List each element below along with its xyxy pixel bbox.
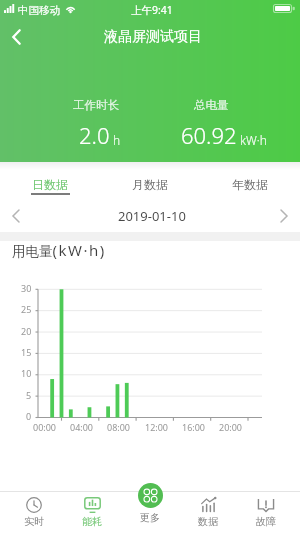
staticText: 工作时长 <box>73 98 119 112</box>
staticText: 20:00 <box>219 421 243 433</box>
staticText: 故障 <box>256 515 276 528</box>
staticText: 月数据 <box>132 177 168 192</box>
staticText: 25 <box>21 303 32 315</box>
button[interactable]: 实时 <box>5 491 63 533</box>
staticText: 更多 <box>140 511 160 524</box>
staticText: 30 <box>21 282 32 294</box>
staticText: 日数据 <box>32 177 68 192</box>
button[interactable]: 年数据 <box>200 162 300 199</box>
staticText: 2019-01-10 <box>118 207 186 225</box>
staticText: h <box>113 132 121 148</box>
staticText: 2.0 <box>79 120 110 150</box>
staticText: 5 <box>26 389 32 401</box>
staticText: 15 <box>21 346 32 358</box>
staticText: 实时 <box>24 515 44 528</box>
staticText: 液晶屏测试项目 <box>3 28 300 46</box>
button[interactable]: 日数据 <box>0 162 100 199</box>
staticText: 上午9:41 <box>131 3 173 17</box>
button[interactable]: 月数据 <box>100 162 200 199</box>
staticText: 年数据 <box>232 177 268 192</box>
staticText: 中国移动 <box>18 4 60 17</box>
button[interactable]: 更多 <box>121 491 179 531</box>
staticText: 04:00 <box>70 421 94 433</box>
staticText: 用电量(kW·h) <box>12 240 106 260</box>
staticText: kW·h <box>240 132 267 148</box>
staticText: 16:00 <box>182 421 206 433</box>
button[interactable]: 能耗 <box>63 491 121 533</box>
button[interactable]: Back <box>0 21 32 53</box>
staticText: 20 <box>21 325 32 337</box>
button[interactable]: Next day <box>270 202 298 230</box>
staticText: 能耗 <box>82 515 102 528</box>
staticText: 0 <box>26 410 32 422</box>
staticText: 00:00 <box>33 421 57 433</box>
staticText: 数据 <box>198 515 218 528</box>
button[interactable]: 数据 <box>179 491 237 533</box>
staticText: 08:00 <box>107 421 131 433</box>
staticText: 总电量 <box>194 98 229 112</box>
staticText: 60.92 <box>181 120 237 150</box>
button[interactable]: 故障 <box>237 491 295 533</box>
staticText: 10 <box>21 367 32 379</box>
staticText: 12:00 <box>145 421 169 433</box>
button[interactable]: Previous day <box>2 202 30 230</box>
